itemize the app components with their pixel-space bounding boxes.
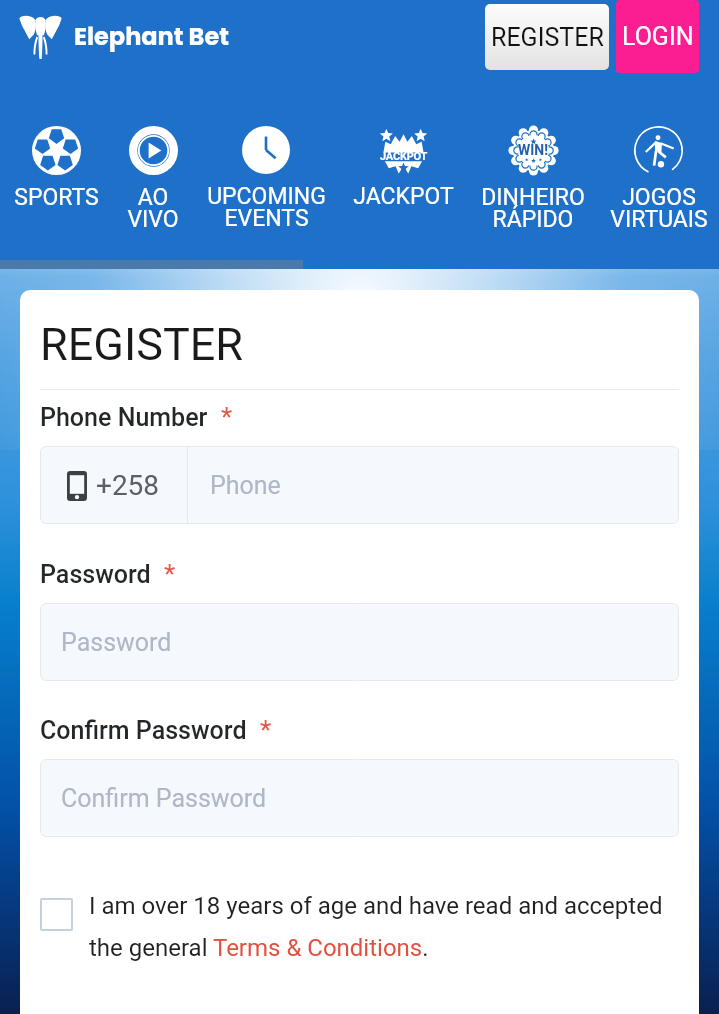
staticText: JOGOS VIRTUAIS (610, 184, 708, 233)
staticText: UPCOMING EVENTS (207, 183, 326, 232)
staticText: Elephant Bet (74, 20, 229, 54)
button[interactable]: UPCOMING EVENTS (194, 126, 338, 232)
staticText: Password (40, 560, 151, 589)
button[interactable]: AO VIVO (112, 126, 194, 233)
staticText: LOGIN (622, 22, 694, 51)
button[interactable]: Confirm Password (40, 759, 679, 837)
staticText: WIN! (518, 142, 549, 158)
button[interactable]: JACKPOT (338, 126, 468, 210)
staticText: Confirm Password (40, 716, 247, 745)
button[interactable]: SPORTS (0, 126, 112, 211)
button[interactable]: I am over 18 checkbox (40, 898, 73, 931)
button[interactable]: WIN! (468, 126, 598, 233)
staticText: SPORTS (14, 184, 99, 211)
staticText: AO VIVO (127, 184, 179, 233)
staticText: +258 (96, 469, 160, 502)
staticText: Phone (210, 471, 281, 500)
button[interactable]: Password (40, 603, 679, 681)
staticText: * (164, 559, 176, 589)
staticText: Confirm Password (61, 784, 267, 813)
button[interactable]: REGISTER (485, 4, 609, 70)
staticText: JACKPOT (353, 183, 454, 210)
staticText: Password (61, 628, 172, 657)
staticText: Phone Number (40, 403, 208, 432)
button[interactable]: JOGOS VIRTUAIS (598, 126, 719, 233)
staticText: * (221, 402, 233, 432)
staticText: DINHEIRO RÁPIDO (481, 184, 585, 233)
staticText: I am over 18 years of age and have read … (89, 892, 679, 962)
staticText: JACKPOT (380, 150, 428, 163)
staticText: * (260, 715, 272, 745)
button[interactable]: +258 (40, 446, 679, 524)
staticText: REGISTER (40, 318, 244, 371)
staticText: REGISTER (491, 23, 604, 52)
button[interactable]: LOGIN (616, 0, 699, 73)
